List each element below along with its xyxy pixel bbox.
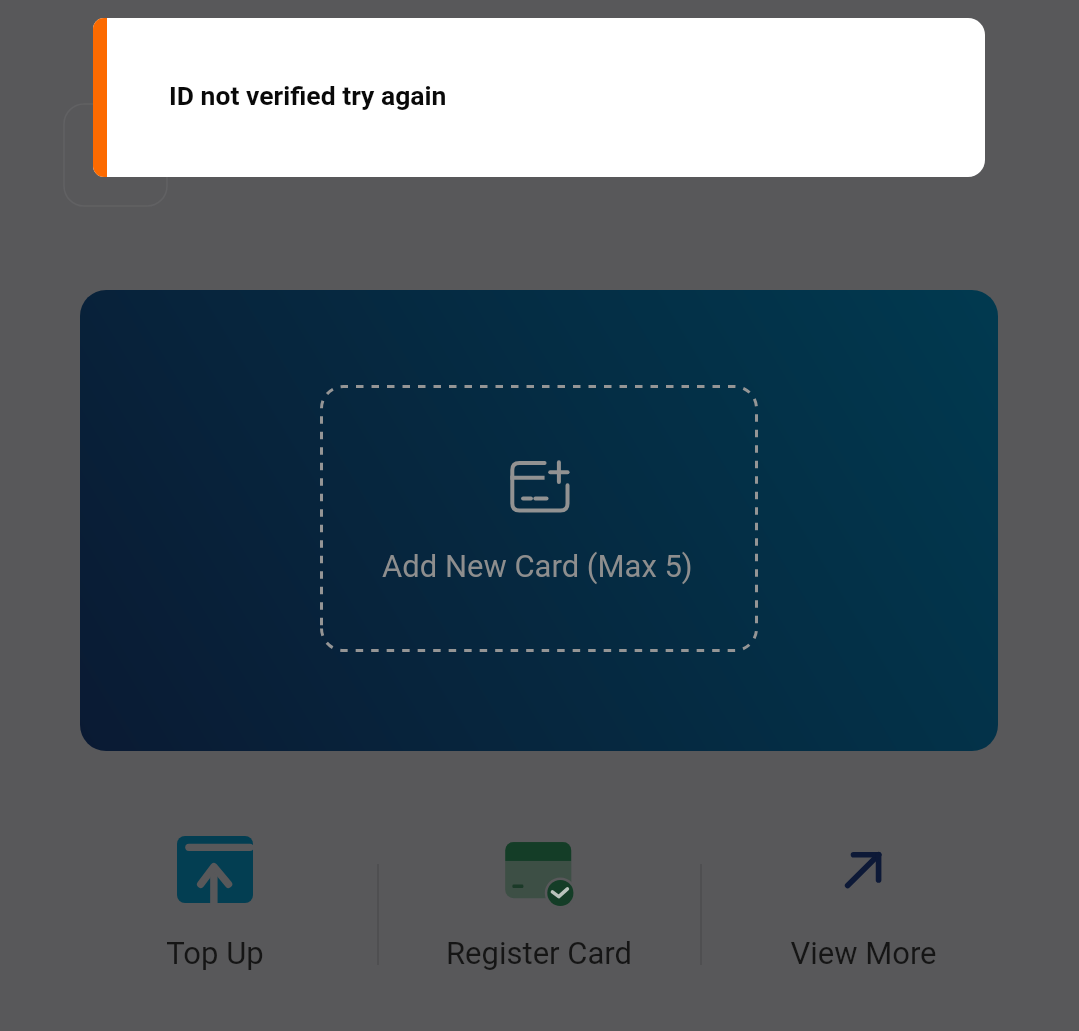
button[interactable]: View More [701,824,1025,986]
button[interactable]: ID not verified try again [93,18,985,177]
other: View More [825,836,901,903]
button[interactable]: Top Up [53,824,377,986]
staticText: Add New Card (Max 5) [382,548,693,584]
button[interactable]: Register Card [377,824,701,986]
other: Add new card [511,460,570,512]
other: Register Card [501,836,577,903]
staticText: View More [790,935,937,971]
other: Top Up [177,836,253,903]
staticText: Register Card [446,935,632,971]
staticText: Top Up [166,935,264,971]
staticText: ID not verified try again [169,80,447,111]
button[interactable]: Add new card [320,385,758,652]
